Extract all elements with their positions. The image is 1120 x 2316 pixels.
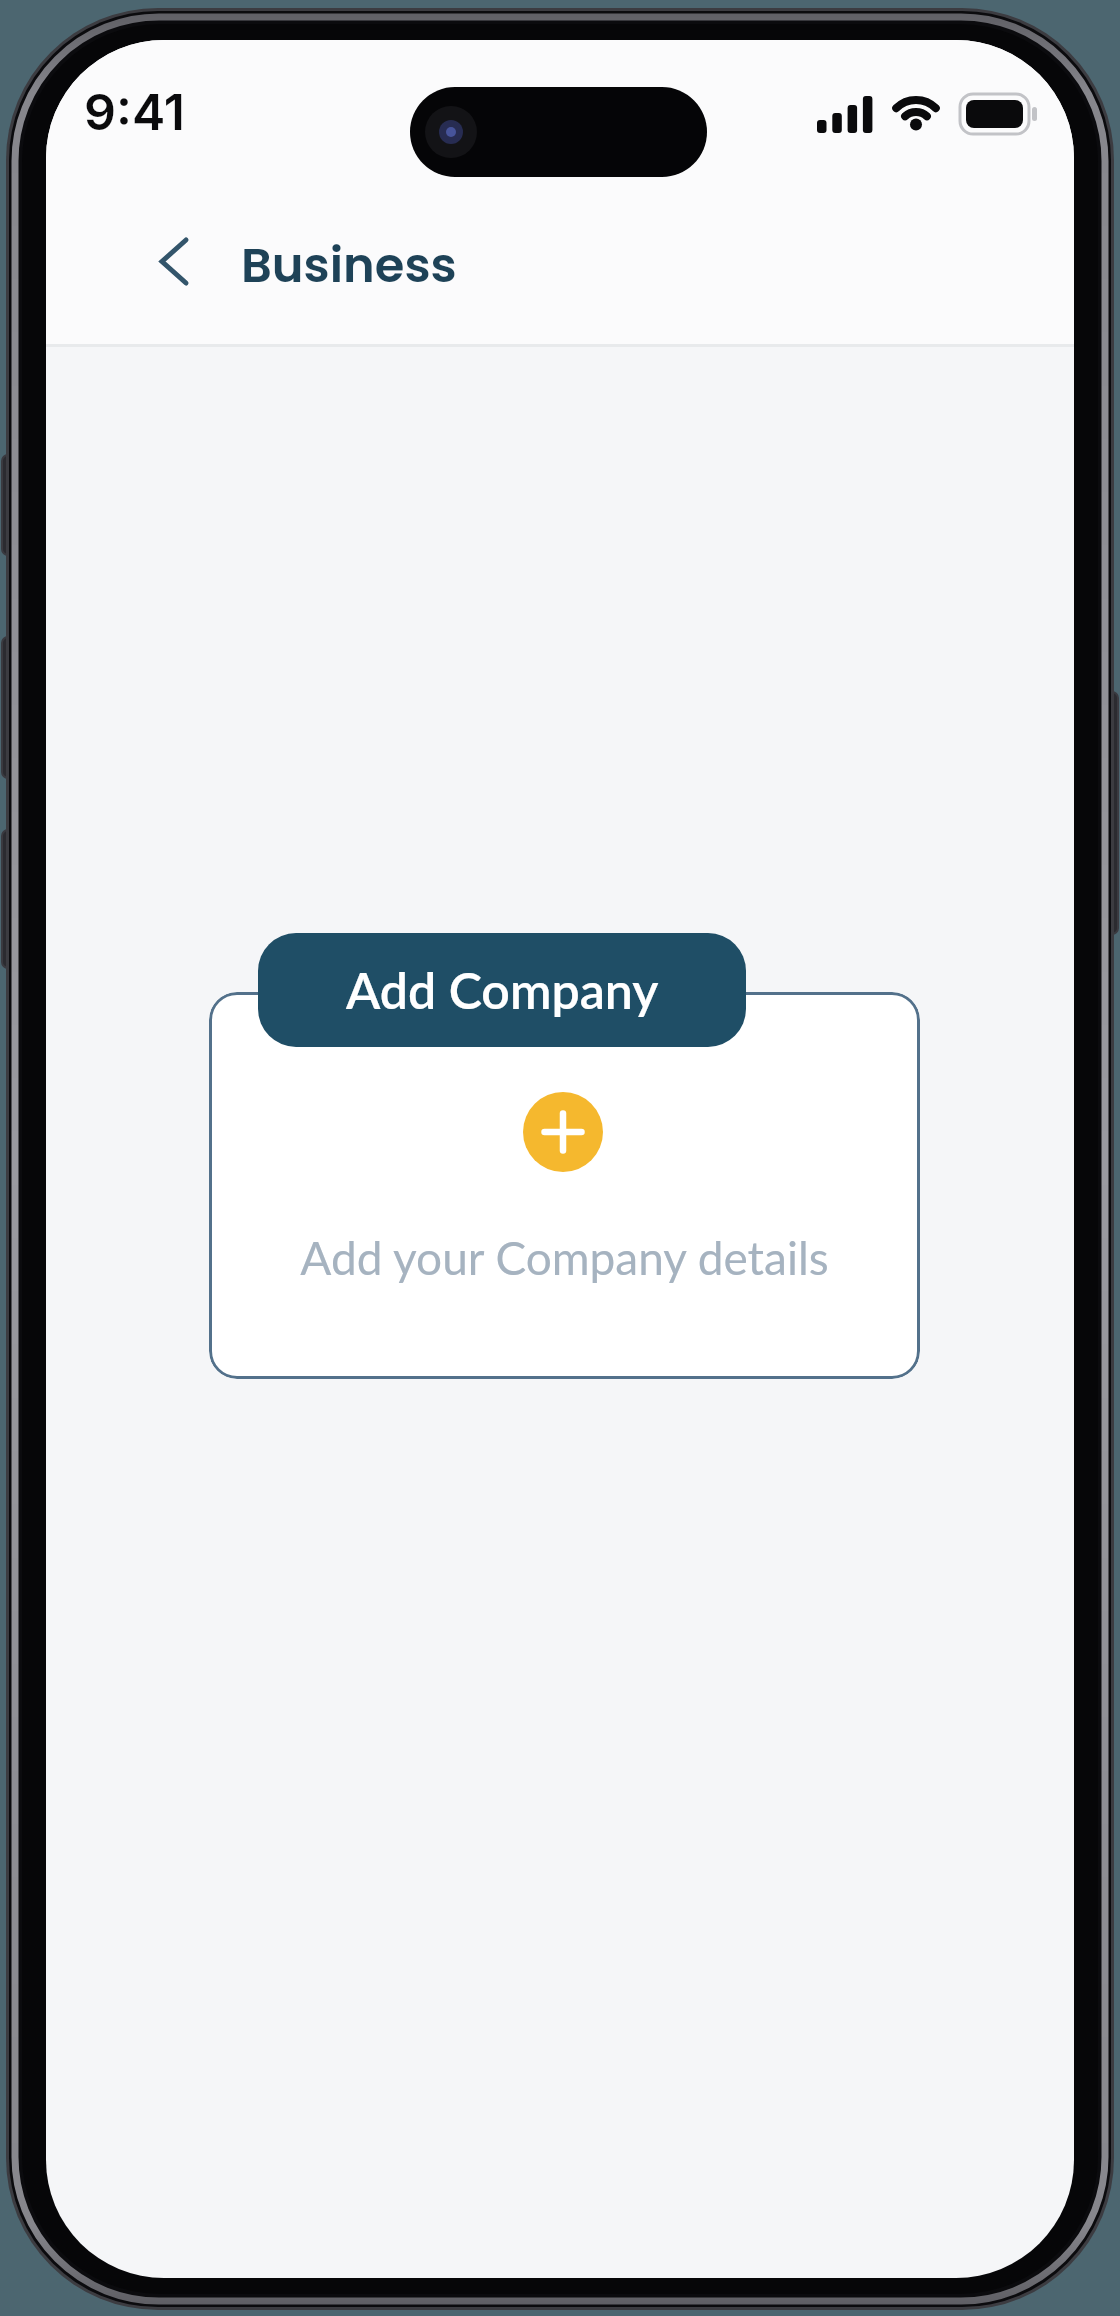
staticText: Business (241, 232, 457, 299)
staticText: Add Company (346, 960, 659, 1020)
staticText: Add your Company details (300, 1230, 829, 1285)
button[interactable] (209, 992, 920, 1379)
button[interactable] (523, 1092, 603, 1172)
staticText: 9:41 (84, 82, 185, 142)
button[interactable] (154, 232, 194, 292)
button[interactable]: Add Company (258, 933, 746, 1047)
